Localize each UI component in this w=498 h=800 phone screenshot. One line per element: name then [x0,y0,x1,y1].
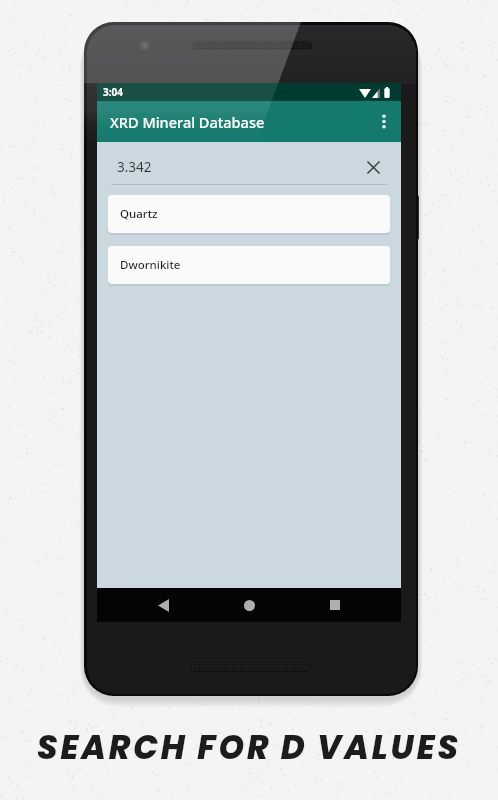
button[interactable]: XRD Mineral Database [97,101,401,142]
button[interactable]: 3.342 [97,142,401,195]
other: Power button [410,195,419,240]
staticText: XRD Mineral Database [110,112,265,132]
staticText: 3:04 [103,85,123,99]
staticText: Quartz [120,206,158,222]
button[interactable]: Quartz [108,195,390,233]
staticText: SEARCH FOR D VALUES [0,725,498,771]
staticText: Dwornikite [120,257,181,273]
button[interactable]: Dwornikite [108,246,390,284]
button[interactable]: Home [234,590,264,620]
button[interactable]: More options [367,101,401,142]
button[interactable]: Recent apps [320,590,350,620]
staticText: 3.342 [117,158,152,176]
button[interactable]: Clear search [364,158,382,176]
button[interactable]: Back [148,590,178,620]
